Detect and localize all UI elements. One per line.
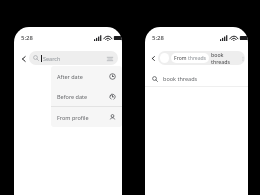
button[interactable]: book threads [145,71,248,86]
staticText: book threads [163,75,198,82]
button[interactable]: Back [18,53,29,64]
button[interactable]: More options [105,54,114,63]
button[interactable]: Back [148,53,158,63]
staticText: 5:28 [152,34,164,42]
staticText: From profile [57,114,89,121]
staticText: Search [43,55,61,62]
button[interactable] [160,53,169,63]
staticText: book threads [211,51,243,65]
button[interactable]: Search [29,51,118,65]
button[interactable]: After date [51,66,122,86]
staticText: threads [188,55,206,62]
button[interactable]: Before date [51,86,122,106]
staticText: From [174,55,187,62]
staticText: 5:28 [21,34,33,42]
button[interactable]: From profile [51,107,122,127]
staticText: Before date [57,93,88,100]
button[interactable]: From [171,53,209,63]
staticText: After date [57,73,83,80]
